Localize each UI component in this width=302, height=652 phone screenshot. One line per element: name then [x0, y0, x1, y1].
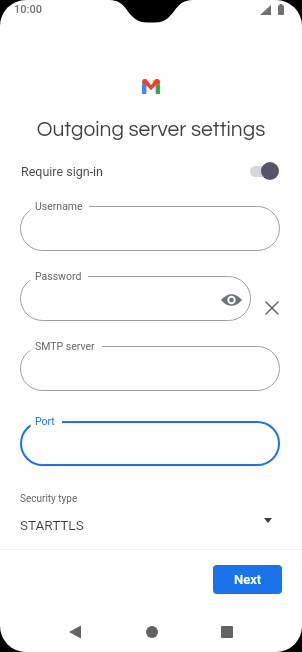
button[interactable]: [20, 206, 280, 251]
button[interactable]: Security type: [0, 484, 302, 538]
staticText: Username: [35, 200, 83, 212]
button[interactable]: [20, 346, 280, 391]
staticText: 10:00: [14, 3, 42, 16]
button[interactable]: Show password: [219, 288, 243, 312]
staticText: STARTTLS: [20, 517, 84, 533]
staticText: Outgoing server settings: [0, 119, 302, 141]
button[interactable]: Recent apps: [208, 613, 246, 651]
staticText: Password: [35, 270, 82, 282]
staticText: Security type: [20, 493, 78, 505]
button[interactable]: Require sign-in: [250, 159, 282, 183]
button[interactable]: Show password: [20, 276, 251, 321]
button[interactable]: Clear: [258, 294, 286, 322]
staticText: SMTP server: [35, 340, 95, 352]
button[interactable]: Next: [213, 565, 282, 594]
staticText: Next: [234, 572, 262, 587]
button[interactable]: Home: [133, 613, 171, 651]
staticText: Require sign-in: [21, 164, 104, 179]
staticText: Port: [35, 415, 55, 427]
button[interactable]: [20, 421, 280, 466]
button[interactable]: Back: [56, 613, 94, 651]
